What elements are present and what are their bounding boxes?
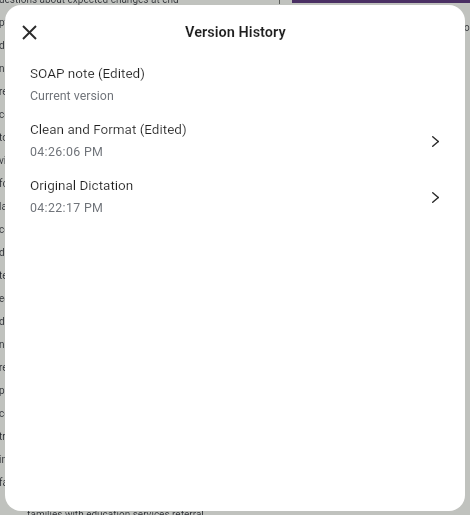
staticText: denies new symptoms; sleep quality bette… [0, 40, 188, 52]
staticText: reviewed medication list, no changes mad… [0, 86, 193, 98]
staticText: vitals stable; blood pressure within ran… [0, 155, 180, 167]
staticText: coordination with case manager pending [0, 408, 180, 420]
staticText: telehealth option offered for next check… [0, 270, 184, 282]
staticText: referral placed to specialty care networ… [0, 362, 177, 374]
staticText: follow-up scheduled in three weeks time [0, 178, 178, 190]
staticText: labs ordered for metabolic panel and CBC [0, 201, 184, 213]
staticText: 04:26:06 PM [30, 144, 104, 159]
staticText: Current version [30, 88, 114, 103]
staticText: uestions about expected changes at end [0, 0, 179, 6]
staticText: discussed warning signs requiring urgent [0, 247, 182, 259]
staticText: patient verbalized understanding of plan [0, 385, 178, 397]
button[interactable]: Original Dictation [5, 169, 465, 225]
staticText: families with education services referra… [0, 477, 176, 489]
staticText: families with education services referra… [27, 509, 204, 515]
staticText: pt reports improvement since last visit … [0, 17, 189, 29]
staticText: nightly without interruption. Appetite g… [0, 63, 186, 75]
staticText: Clean and Format (Edited) [30, 121, 187, 137]
staticText: insurance authorization request submitte… [0, 454, 187, 466]
button[interactable]: SOAP note (Edited) [5, 57, 465, 113]
staticText: transport assistance arranged for visits [0, 431, 174, 443]
staticText: SOAP note (Edited) [30, 65, 145, 81]
staticText: documentation reviewed and signed by MD [0, 316, 191, 328]
staticText: 04:22:17 PM [30, 200, 104, 215]
staticText: counseling provided regarding diet chang… [0, 109, 193, 121]
staticText: Original Dictation [30, 177, 134, 193]
staticText: tolerating therapy well with no complain… [0, 132, 184, 144]
button[interactable]: Close [9, 12, 49, 52]
staticText: continue current plan with home exercise… [0, 224, 187, 236]
staticText: Version History [185, 24, 286, 41]
staticText: no acute distress noted during the exam [0, 339, 178, 351]
button[interactable]: Clean and Format (Edited) [5, 113, 465, 169]
staticText: education handout provided to the family [0, 293, 181, 305]
staticText: oc [464, 22, 470, 34]
